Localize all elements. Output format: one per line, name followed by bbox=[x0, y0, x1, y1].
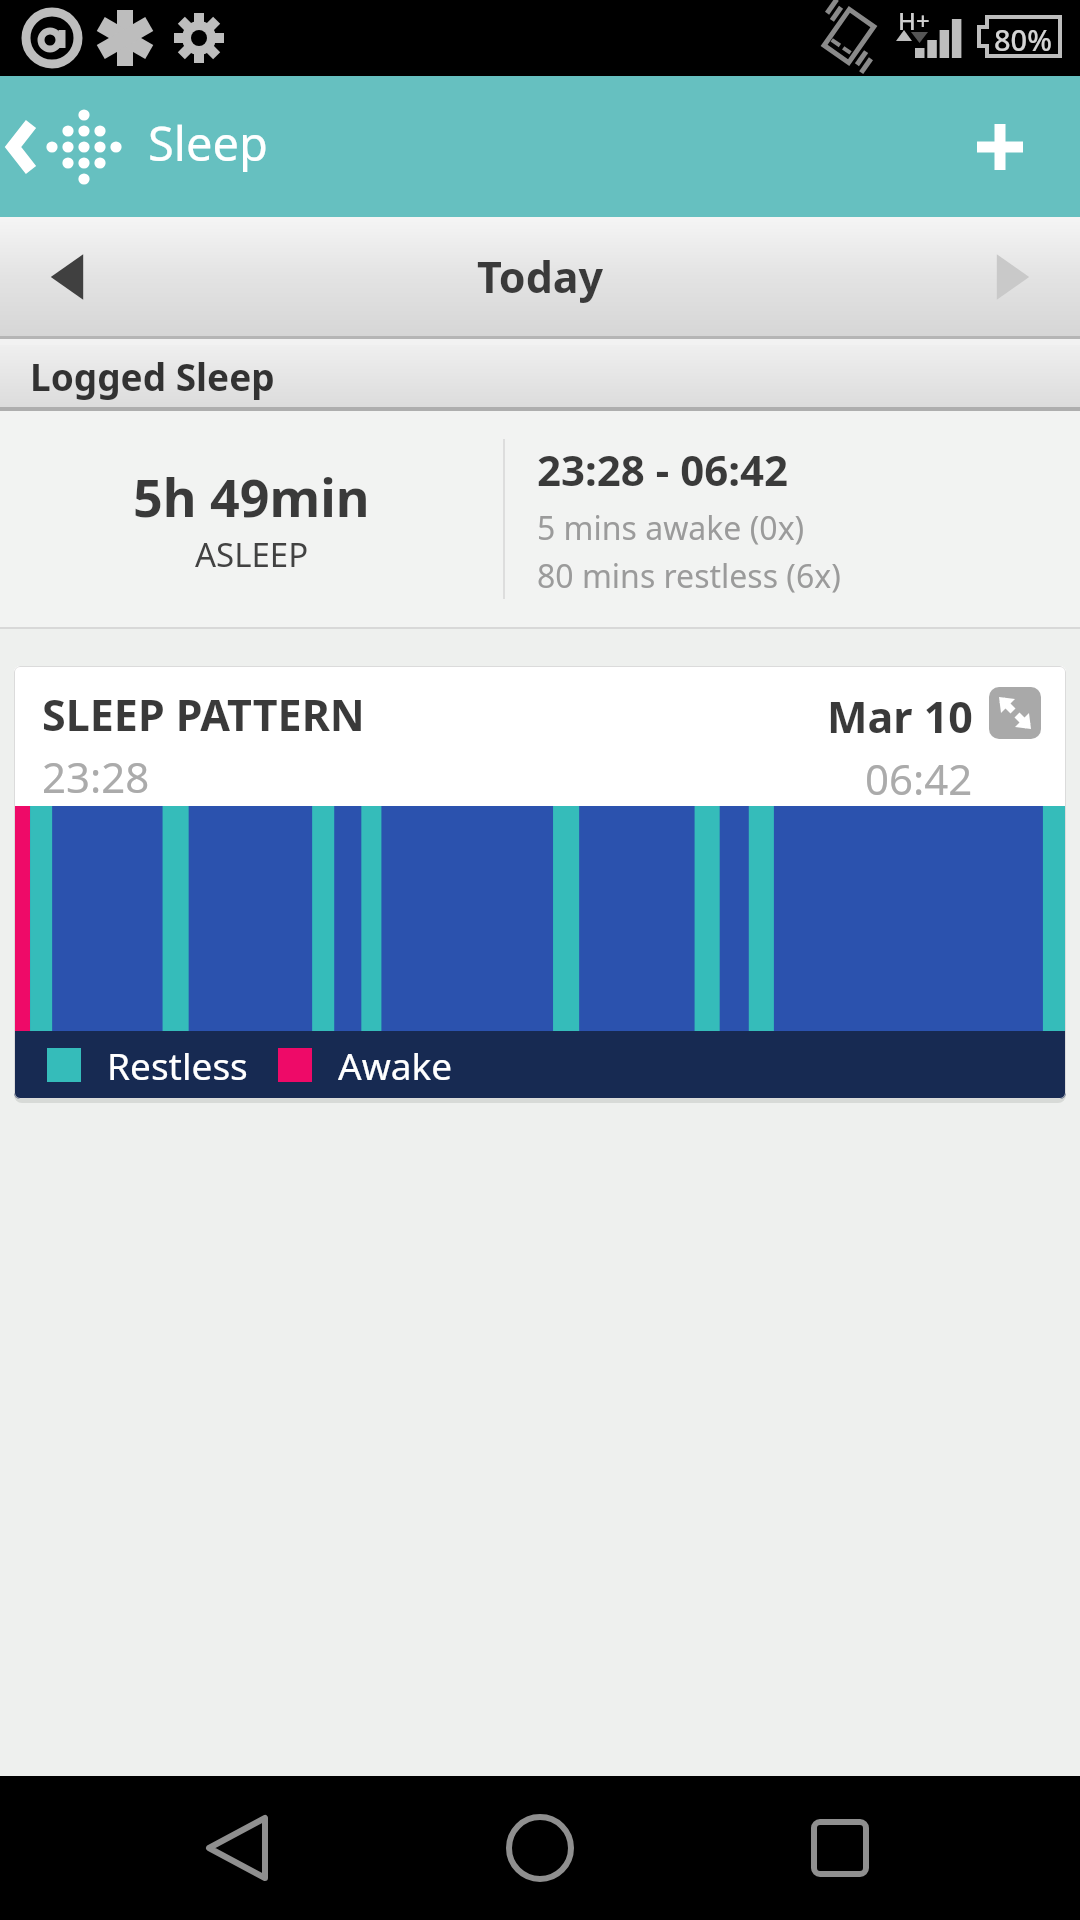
staticText: 5 mins awake (0x) bbox=[537, 506, 805, 550]
button[interactable] bbox=[506, 1814, 574, 1882]
staticText: SLEEP PATTERN bbox=[42, 685, 365, 744]
staticText: 23:28 - 06:42 bbox=[537, 441, 789, 498]
staticText: ASLEEP bbox=[195, 532, 309, 577]
button[interactable] bbox=[980, 247, 1040, 307]
staticText: Mar 10 bbox=[827, 687, 973, 746]
staticText: Sleep bbox=[148, 111, 268, 175]
staticText: 23:28 bbox=[42, 748, 150, 805]
button[interactable] bbox=[972, 119, 1028, 175]
button[interactable] bbox=[811, 1819, 869, 1877]
staticText: Restless bbox=[107, 1040, 248, 1090]
staticText: 80 mins restless (6x) bbox=[537, 554, 841, 598]
staticText: Today bbox=[477, 247, 604, 306]
staticText: 80% bbox=[994, 20, 1052, 59]
staticText: Awake bbox=[338, 1040, 453, 1090]
button[interactable]: SLEEP PATTERN bbox=[14, 666, 1066, 1099]
button[interactable] bbox=[40, 247, 100, 307]
button[interactable] bbox=[989, 687, 1041, 739]
button[interactable] bbox=[205, 1814, 269, 1882]
staticText: H+ bbox=[898, 4, 930, 37]
button[interactable]: Sleep bbox=[0, 92, 250, 202]
staticText: 06:42 bbox=[865, 750, 973, 806]
staticText: Logged Sleep bbox=[30, 351, 275, 401]
staticText: 5h 49min bbox=[133, 461, 370, 532]
